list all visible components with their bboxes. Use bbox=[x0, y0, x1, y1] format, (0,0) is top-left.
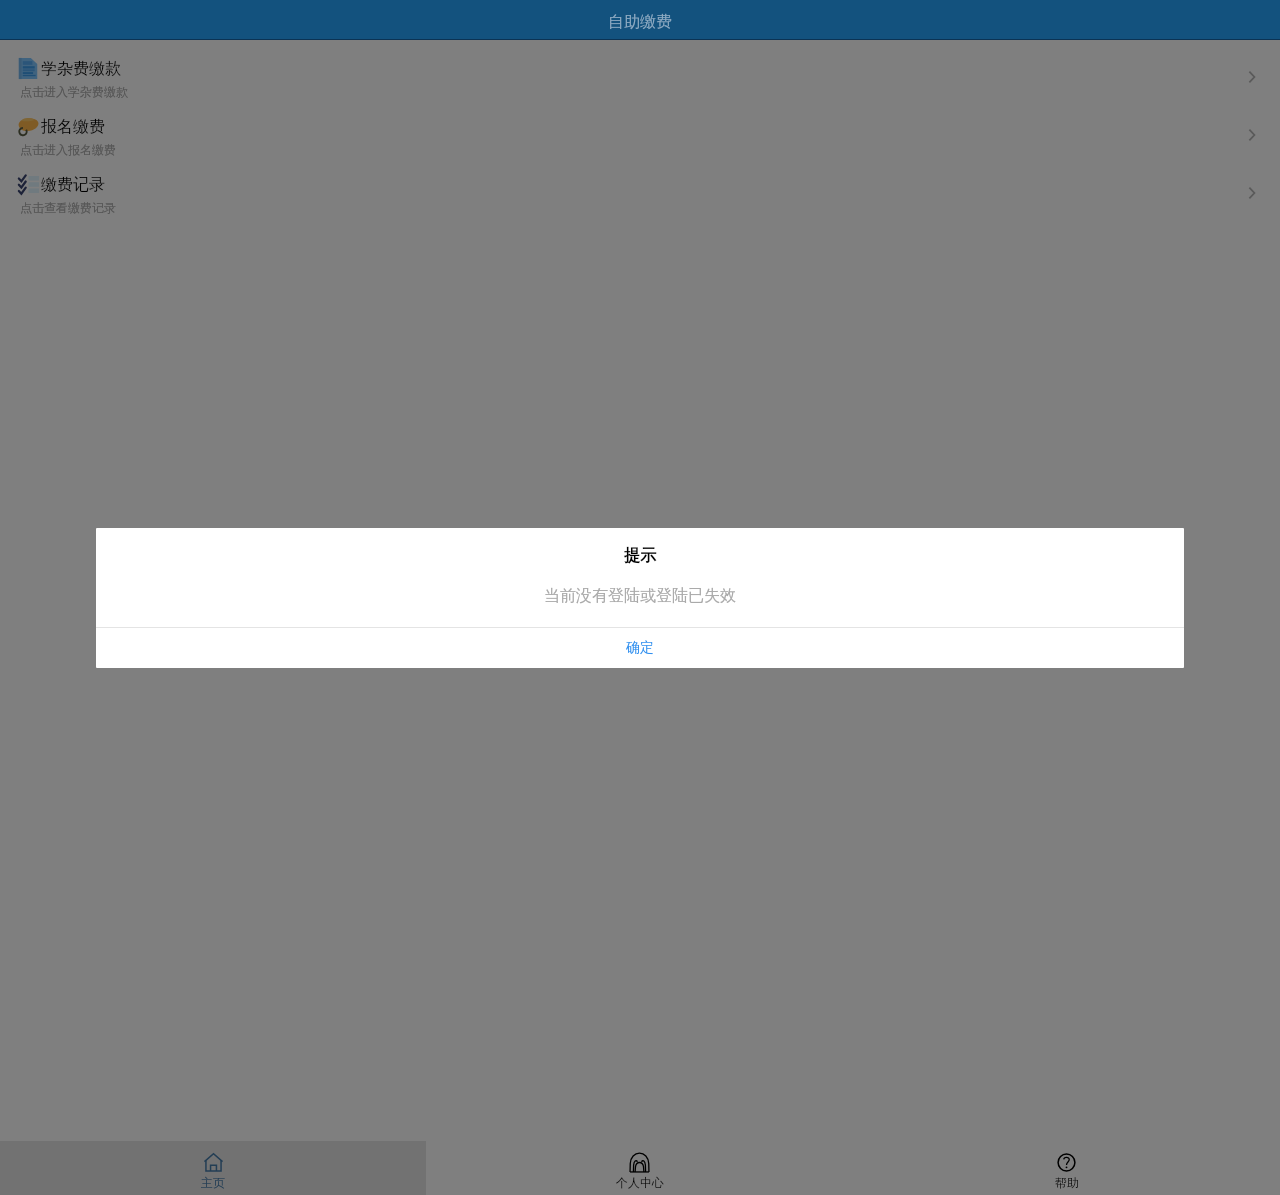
staticText: 点击进入报名缴费 bbox=[20, 142, 116, 156]
button[interactable]: 学杂费缴款 bbox=[0, 40, 1280, 98]
button[interactable]: 帮助 bbox=[853, 1141, 1280, 1195]
staticText: 主页 bbox=[201, 1175, 225, 1190]
button[interactable]: 报名缴费 bbox=[0, 98, 1280, 156]
staticText: 点击查看缴费记录 bbox=[20, 200, 116, 214]
other: Open 学杂费缴款 bbox=[1246, 71, 1258, 83]
staticText: 学杂费缴款 bbox=[41, 59, 121, 79]
staticText: 确定 bbox=[626, 639, 654, 657]
button[interactable]: 个人中心 bbox=[426, 1141, 853, 1195]
staticText: 自助缴费 bbox=[608, 12, 672, 32]
staticText: 个人中心 bbox=[616, 1175, 664, 1190]
staticText: 缴费记录 bbox=[41, 175, 105, 195]
staticText: 提示 bbox=[96, 546, 1184, 566]
button[interactable]: 缴费记录 bbox=[0, 156, 1280, 214]
button[interactable]: 确定 bbox=[96, 628, 1184, 668]
staticText: 当前没有登陆或登陆已失效 bbox=[96, 586, 1184, 606]
staticText: 报名缴费 bbox=[41, 117, 105, 137]
staticText: 帮助 bbox=[1055, 1175, 1079, 1190]
other: Open 缴费记录 bbox=[1246, 187, 1258, 199]
other: Open 报名缴费 bbox=[1246, 129, 1258, 141]
button[interactable]: 主页 bbox=[0, 1141, 426, 1195]
staticText: 点击进入学杂费缴款 bbox=[20, 84, 128, 98]
